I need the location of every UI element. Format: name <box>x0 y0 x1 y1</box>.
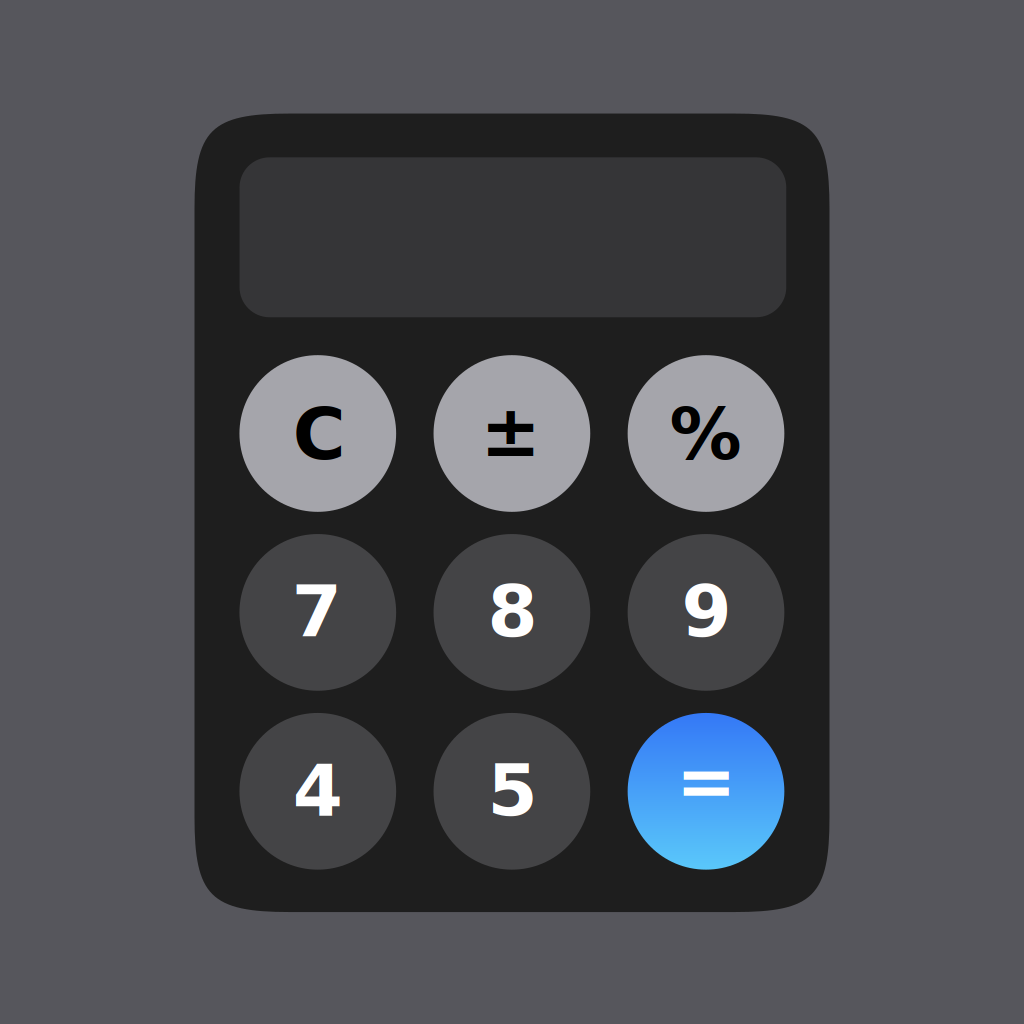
button[interactable]: 5 <box>434 713 590 870</box>
staticText: % <box>669 392 741 476</box>
button[interactable]: 8 <box>434 534 590 691</box>
button[interactable]: 7 <box>239 534 396 691</box>
button[interactable]: Plus minus <box>434 355 590 512</box>
button[interactable]: Equals <box>628 713 784 870</box>
staticText: 7 <box>292 569 342 653</box>
button[interactable]: 9 <box>628 534 784 691</box>
staticText: 8 <box>487 569 537 653</box>
button[interactable]: Clear <box>239 355 396 512</box>
staticText: C <box>293 392 346 476</box>
staticText: 4 <box>293 748 343 832</box>
staticText: 5 <box>487 748 537 832</box>
staticText: 9 <box>681 569 731 653</box>
staticText: ± <box>480 389 540 473</box>
staticText: = <box>676 739 736 823</box>
button[interactable]: Percent <box>628 355 784 512</box>
button[interactable]: 4 <box>239 713 396 870</box>
